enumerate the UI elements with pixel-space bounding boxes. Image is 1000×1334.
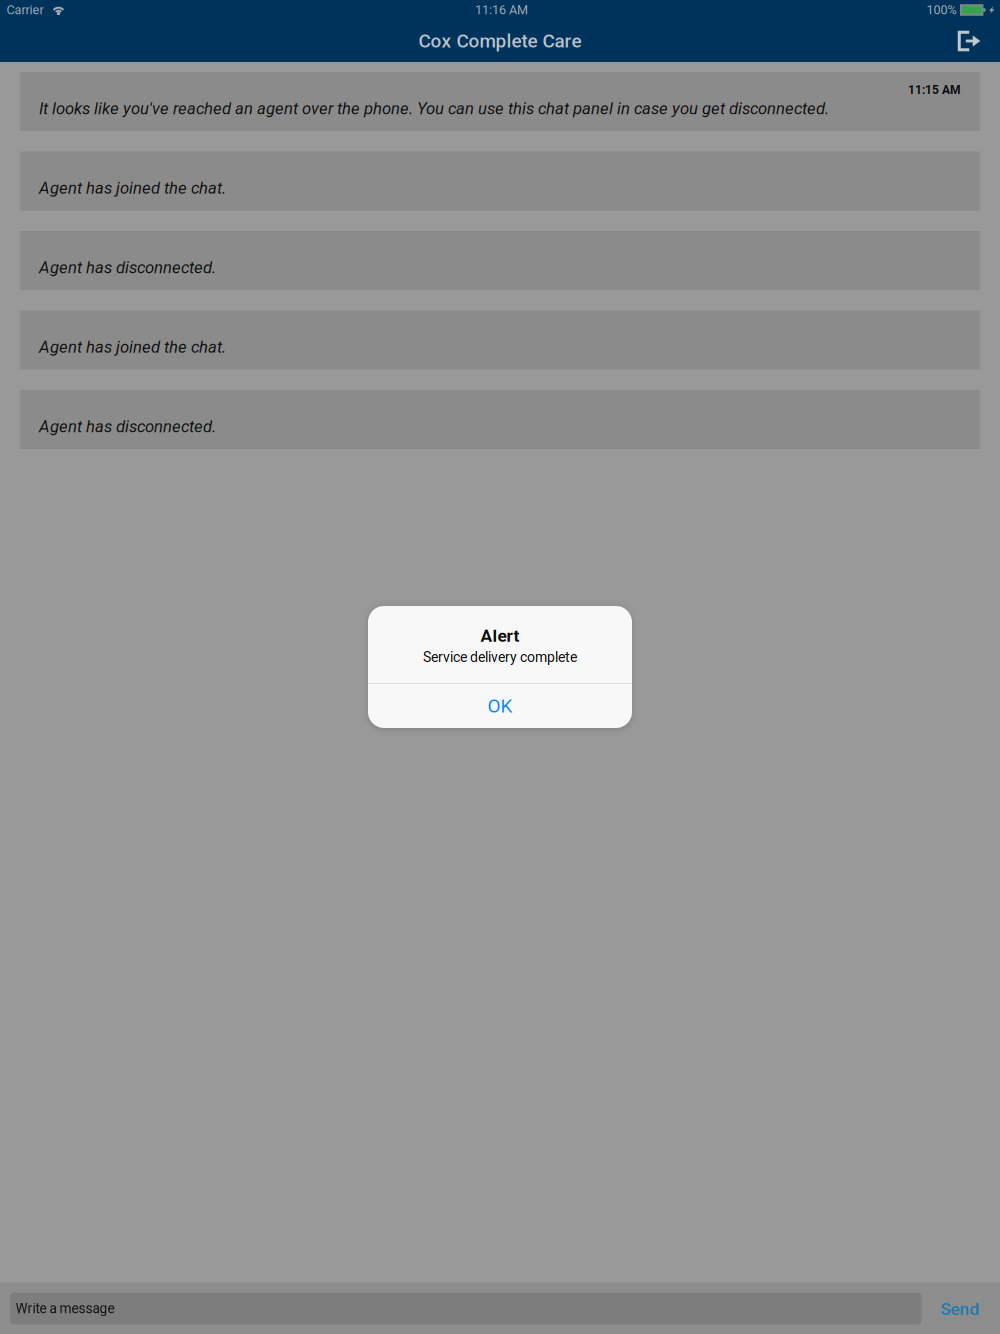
staticText: Agent has joined the chat. [39, 178, 226, 198]
staticText: It looks like you've reached an agent ov… [39, 99, 829, 118]
staticText: 11:16 AM [475, 3, 528, 17]
staticText: Cox Complete Care [418, 30, 581, 52]
staticText: Send [940, 1299, 979, 1319]
staticText: Service delivery complete [423, 649, 577, 665]
staticText: Carrier [6, 3, 43, 17]
staticText: 11:15 AM [908, 83, 961, 97]
staticText: Write a message [15, 1300, 114, 1317]
button[interactable]: Send [931, 1292, 989, 1329]
button[interactable]: Write a message [10, 1292, 921, 1324]
staticText: 100% [926, 3, 956, 17]
staticText: Agent has disconnected. [39, 258, 216, 277]
button[interactable]: OK [368, 684, 632, 728]
button[interactable]: Sign out [943, 20, 995, 62]
staticText: Alert [480, 626, 519, 646]
staticText: Agent has disconnected. [39, 417, 216, 436]
staticText: Agent has joined the chat. [39, 337, 226, 357]
staticText: OK [487, 695, 512, 717]
